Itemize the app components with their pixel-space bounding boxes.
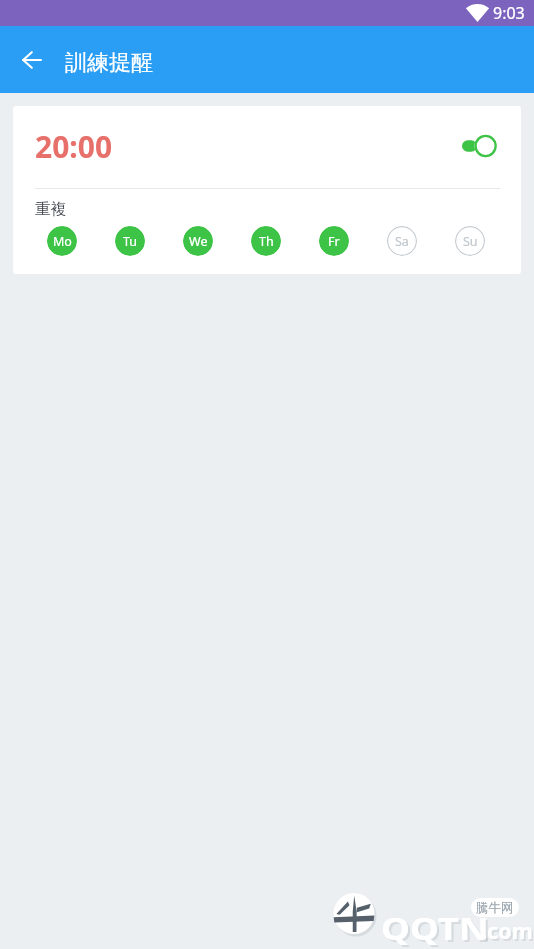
staticText: 重複 [35,199,66,219]
button[interactable]: Mo [47,226,77,256]
staticText: We [189,233,208,250]
button[interactable]: Toggle reminder [456,131,502,161]
staticText: 20:00 [35,126,113,167]
button[interactable]: Tu [115,226,145,256]
staticText: QQTN [383,909,492,949]
staticText: 9:03 [493,2,525,24]
button[interactable]: We [183,226,213,256]
button[interactable]: Back [9,37,55,83]
button[interactable]: Th [251,226,281,256]
staticText: 騰牛网 [476,900,514,916]
button[interactable]: Su [455,226,485,256]
staticText: Th [259,233,274,250]
staticText: QQTN [381,907,490,949]
staticText: .com [481,916,533,944]
staticText: 訓練提醒 [65,49,153,77]
button[interactable]: Sa [387,226,417,256]
staticText: Su [463,233,478,250]
staticText: .com [483,918,534,946]
button[interactable]: Fr [319,226,349,256]
staticText: Mo [53,233,72,250]
staticText: Tu [123,233,138,250]
staticText: Sa [395,233,409,250]
button[interactable]: 20:00 [31,120,141,168]
staticText: Fr [328,233,340,250]
